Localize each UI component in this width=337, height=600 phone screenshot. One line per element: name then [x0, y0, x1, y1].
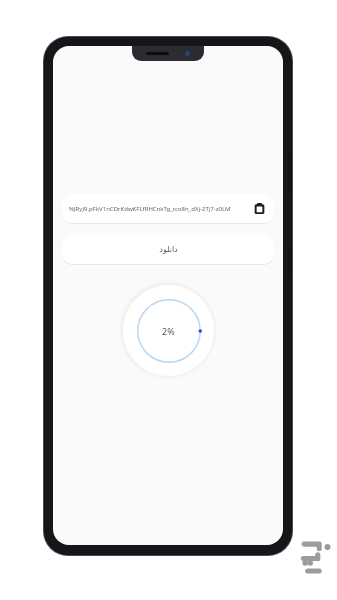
- staticText: %JRyJ9.pFkV1nCDrKdwKFLfRHCnkTg_tco8n_dXj…: [69, 205, 249, 213]
- staticText: 2%: [162, 325, 175, 337]
- staticText: دانلود: [159, 245, 178, 254]
- button[interactable]: %JRyJ9.pFkV1nCDrKdwKFLfRHCnkTg_tco8n_dXj…: [62, 194, 274, 223]
- button[interactable]: Paste link from clipboard: [252, 201, 267, 216]
- button[interactable]: دانلود: [62, 235, 274, 264]
